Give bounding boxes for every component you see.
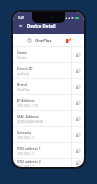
staticText: Device xyxy=(17,56,27,60)
staticText: MAC Address xyxy=(17,114,39,119)
button[interactable]: Copy DNS address 1 xyxy=(72,143,84,158)
button[interactable]: MAC Address xyxy=(13,111,71,126)
staticText: 192.168.1.1 xyxy=(17,165,35,167)
staticText: Device Detail xyxy=(27,23,56,29)
staticText: DNS address 1 xyxy=(17,146,41,151)
button[interactable]: Gateway xyxy=(13,127,71,142)
button[interactable]: Copy IP Address xyxy=(72,95,84,110)
button[interactable]: Back xyxy=(17,22,25,30)
button[interactable]: Speed test xyxy=(64,36,72,44)
button[interactable]: Name xyxy=(13,47,71,62)
button[interactable]: DNS address 1 xyxy=(13,143,71,158)
staticText: Device ID xyxy=(17,66,33,71)
button[interactable]: Copy Name xyxy=(72,47,84,62)
staticText: 02:00:00:00:00:00 xyxy=(17,120,44,124)
staticText: IP Address xyxy=(17,98,35,103)
staticText: Brand xyxy=(17,82,27,87)
staticText: OnePlus xyxy=(35,38,52,43)
staticText: Gateway xyxy=(17,130,32,135)
button[interactable]: Device ID xyxy=(13,63,71,78)
staticText: 9:41 xyxy=(18,16,25,20)
button[interactable]: Copy Device ID xyxy=(72,63,84,78)
staticText: Name xyxy=(17,50,27,55)
staticText: 192.168.1.1 xyxy=(17,136,35,140)
button[interactable]: IP Address xyxy=(13,95,71,110)
button[interactable]: Copy Gateway xyxy=(72,127,84,142)
staticText: 192.168.1.1 xyxy=(17,152,35,156)
button[interactable]: Copy Brand xyxy=(72,79,84,94)
staticText: DNS address 2 xyxy=(17,159,41,164)
staticText: 192.168.1.115 xyxy=(17,104,38,108)
button[interactable]: DNS address 2 xyxy=(13,159,71,167)
button[interactable]: Brand xyxy=(13,79,71,94)
staticText: OnePlus xyxy=(17,88,30,92)
button[interactable]: Copy MAC Address xyxy=(72,111,84,126)
staticText: android xyxy=(17,72,29,76)
button[interactable]: Copy DNS address 2 xyxy=(72,159,84,167)
